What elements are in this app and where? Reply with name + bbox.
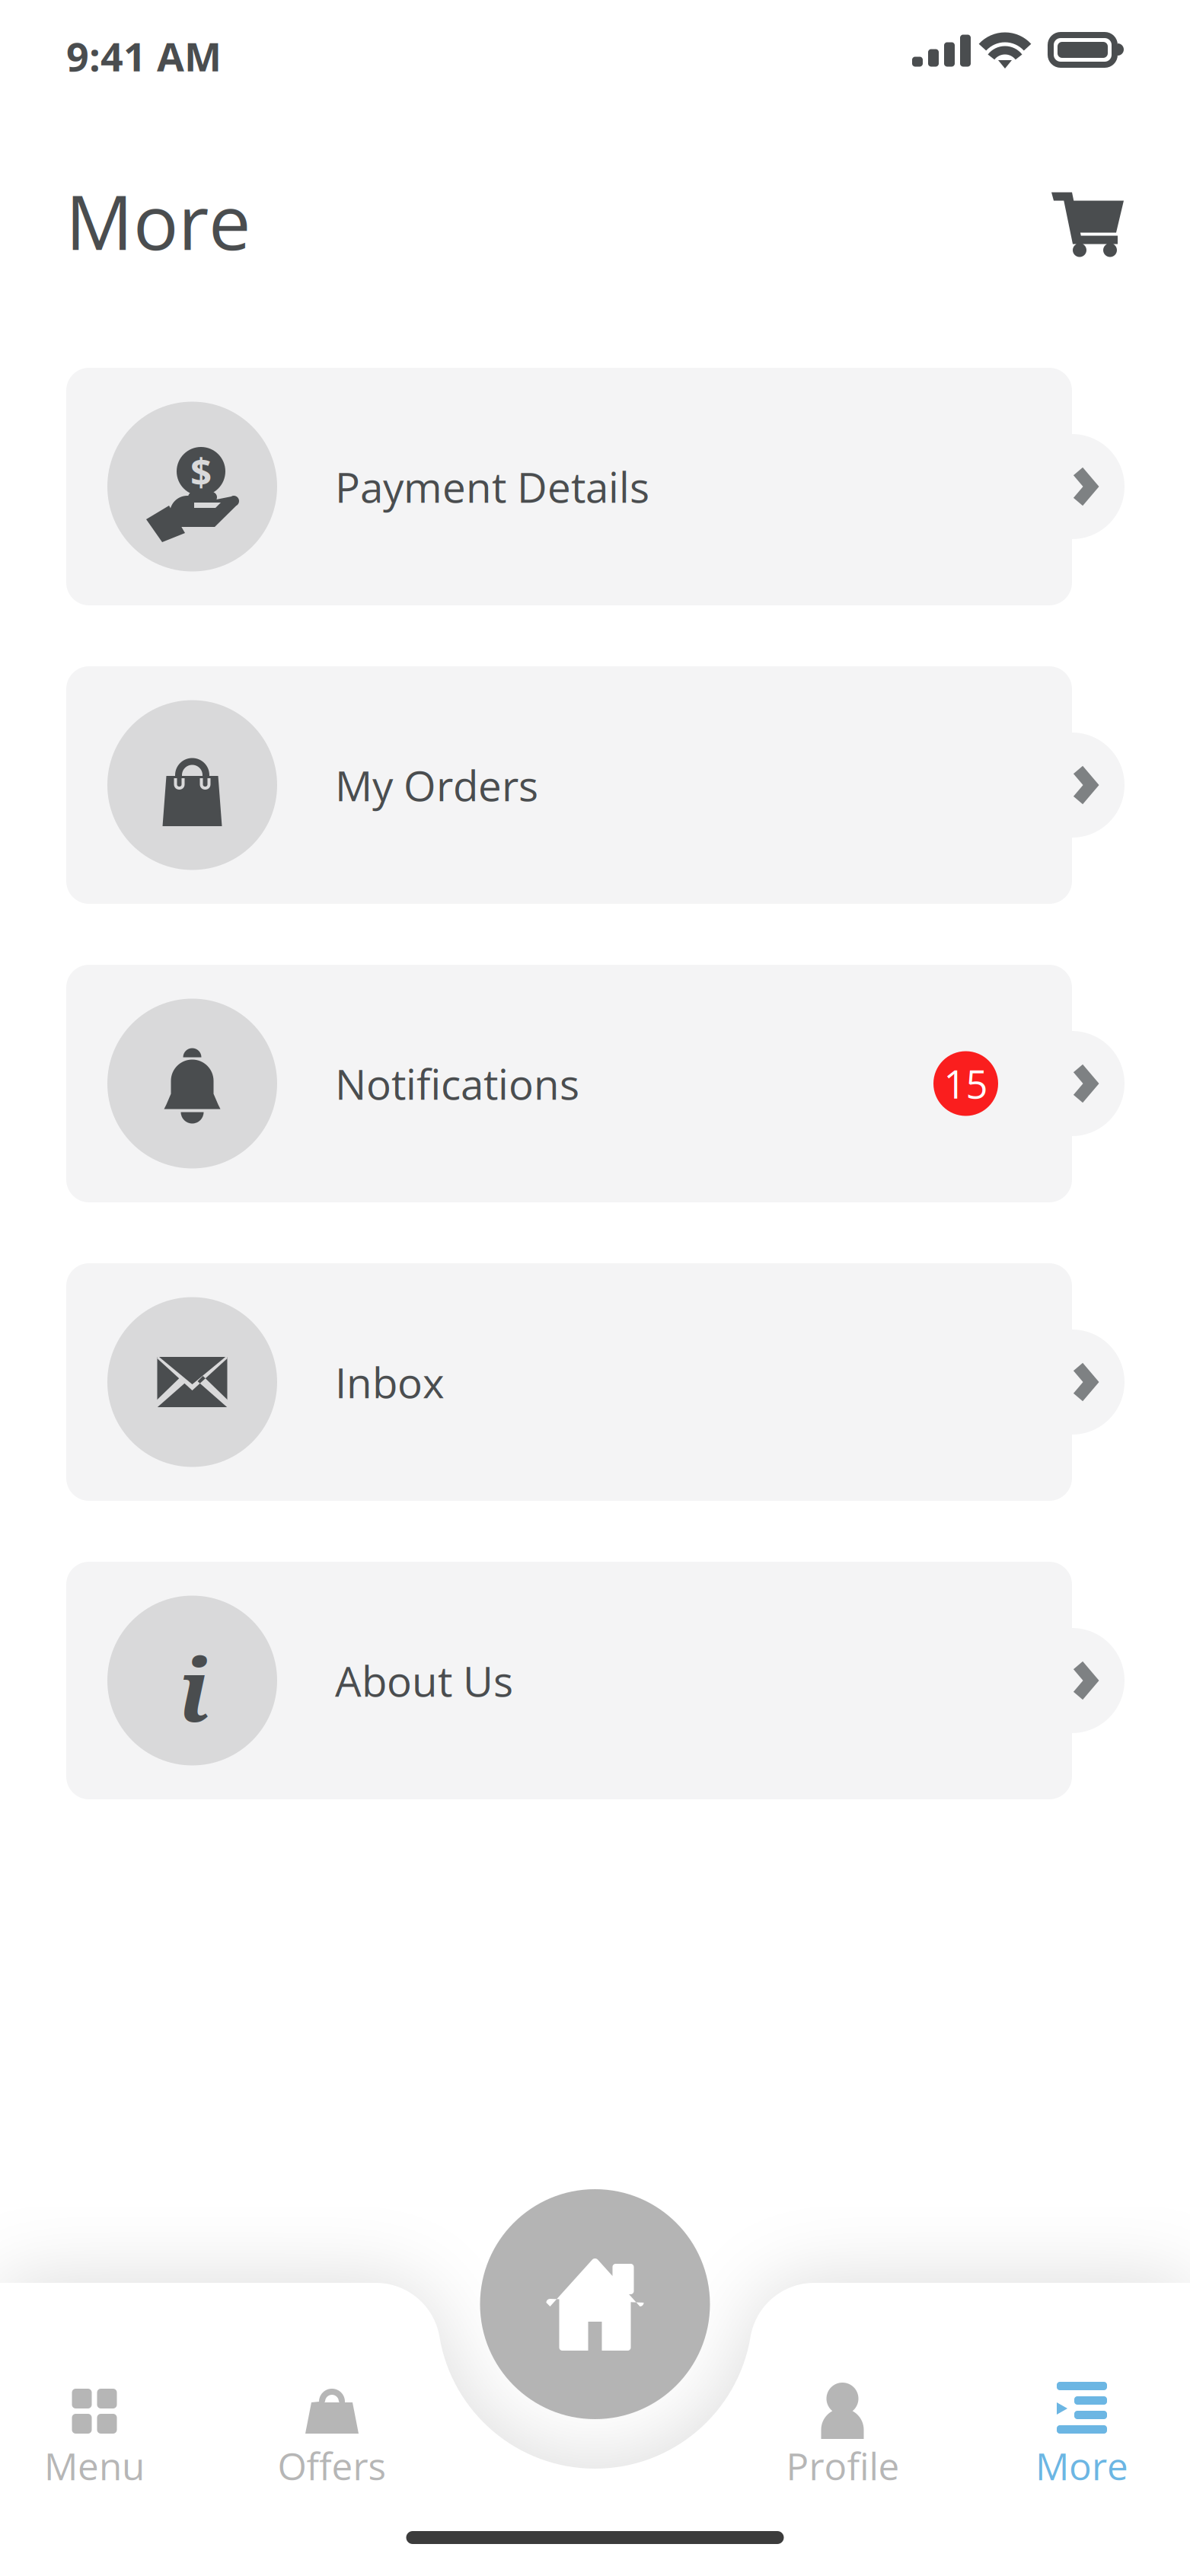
staticText: Profile: [786, 2440, 900, 2491]
button[interactable]: Notifications: [66, 965, 1125, 1202]
button[interactable]: Offers: [218, 2383, 446, 2485]
staticText: $: [190, 446, 212, 497]
button[interactable]: Inbox: [66, 1263, 1125, 1501]
staticText: Inbox: [335, 1354, 445, 1410]
staticText: About Us: [335, 1652, 513, 1709]
staticText: i: [179, 1629, 209, 1747]
staticText: My Orders: [335, 757, 538, 813]
staticText: Notifications: [335, 1055, 579, 1112]
button[interactable]: My Orders: [66, 666, 1125, 904]
staticText: 15: [944, 1057, 988, 1110]
staticText: More: [1035, 2440, 1128, 2491]
button[interactable]: Cart: [1035, 192, 1137, 287]
staticText: More: [65, 170, 250, 272]
staticText: 9:41 AM: [66, 29, 222, 83]
staticText: Payment Details: [335, 458, 649, 515]
button[interactable]: Profile: [729, 2383, 957, 2485]
button[interactable]: More: [968, 2383, 1190, 2485]
button[interactable]: Menu: [0, 2383, 209, 2485]
staticText: Offers: [278, 2440, 386, 2491]
button[interactable]: i: [66, 1562, 1125, 1799]
staticText: Menu: [44, 2440, 145, 2491]
button[interactable]: $: [66, 368, 1125, 605]
